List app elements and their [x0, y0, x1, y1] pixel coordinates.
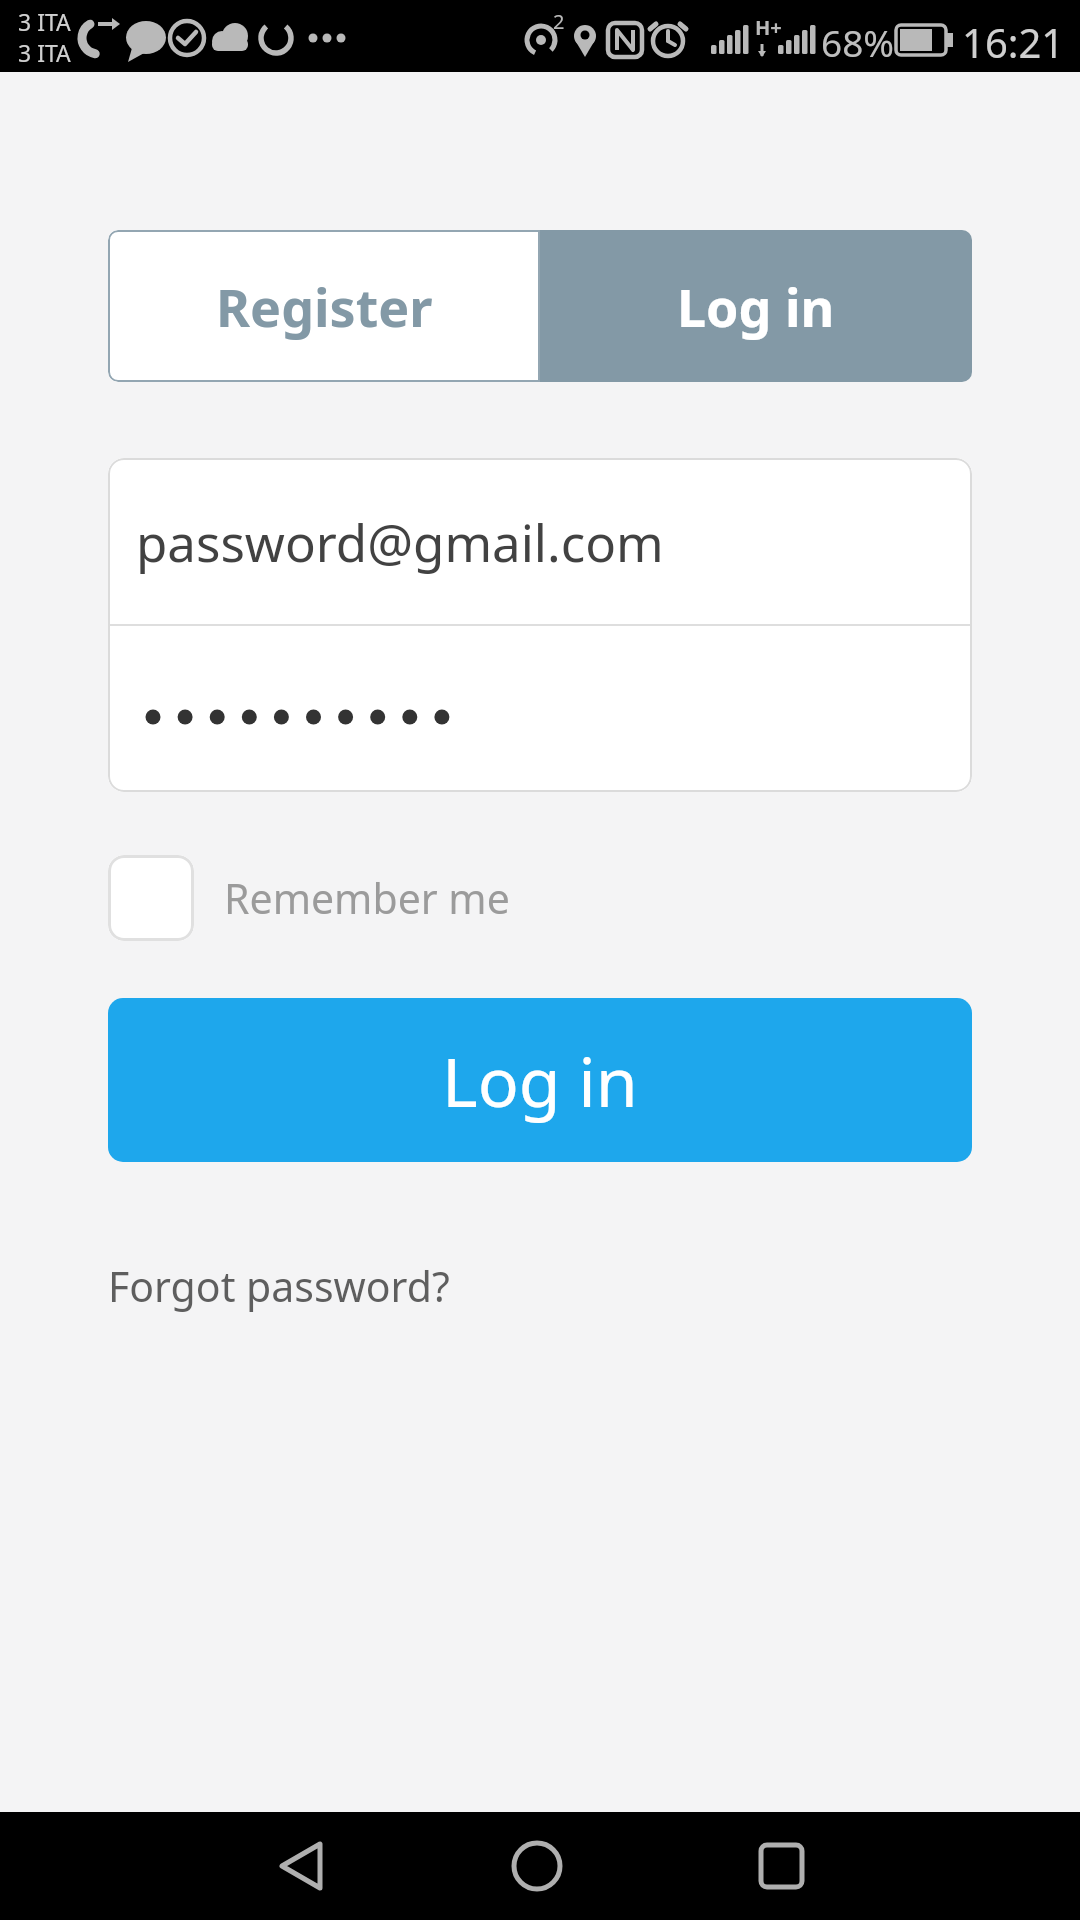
staticText: Log in — [677, 271, 835, 342]
staticText: 2 — [553, 8, 565, 35]
button[interactable] — [270, 1834, 330, 1898]
staticText: H+ — [755, 14, 782, 41]
button[interactable]: Register — [108, 230, 540, 382]
staticText: 16:21 — [962, 15, 1065, 69]
button[interactable]: Log in — [540, 230, 972, 382]
staticText: Remember me — [224, 870, 510, 926]
staticText: Register — [216, 271, 433, 342]
button[interactable]: Forgot password? — [108, 1258, 450, 1314]
staticText: 3 ITA — [18, 6, 71, 37]
staticText: 3 ITA — [18, 37, 71, 68]
button[interactable] — [108, 626, 972, 792]
button[interactable] — [751, 1834, 811, 1898]
button[interactable]: Remember me — [108, 855, 510, 941]
button[interactable]: Log in — [108, 998, 972, 1162]
button[interactable]: password@gmail.com — [108, 458, 972, 624]
staticText: Log in — [442, 1034, 638, 1127]
staticText: 68% — [821, 17, 895, 67]
button[interactable] — [507, 1834, 567, 1898]
staticText: password@gmail.com — [136, 507, 664, 576]
